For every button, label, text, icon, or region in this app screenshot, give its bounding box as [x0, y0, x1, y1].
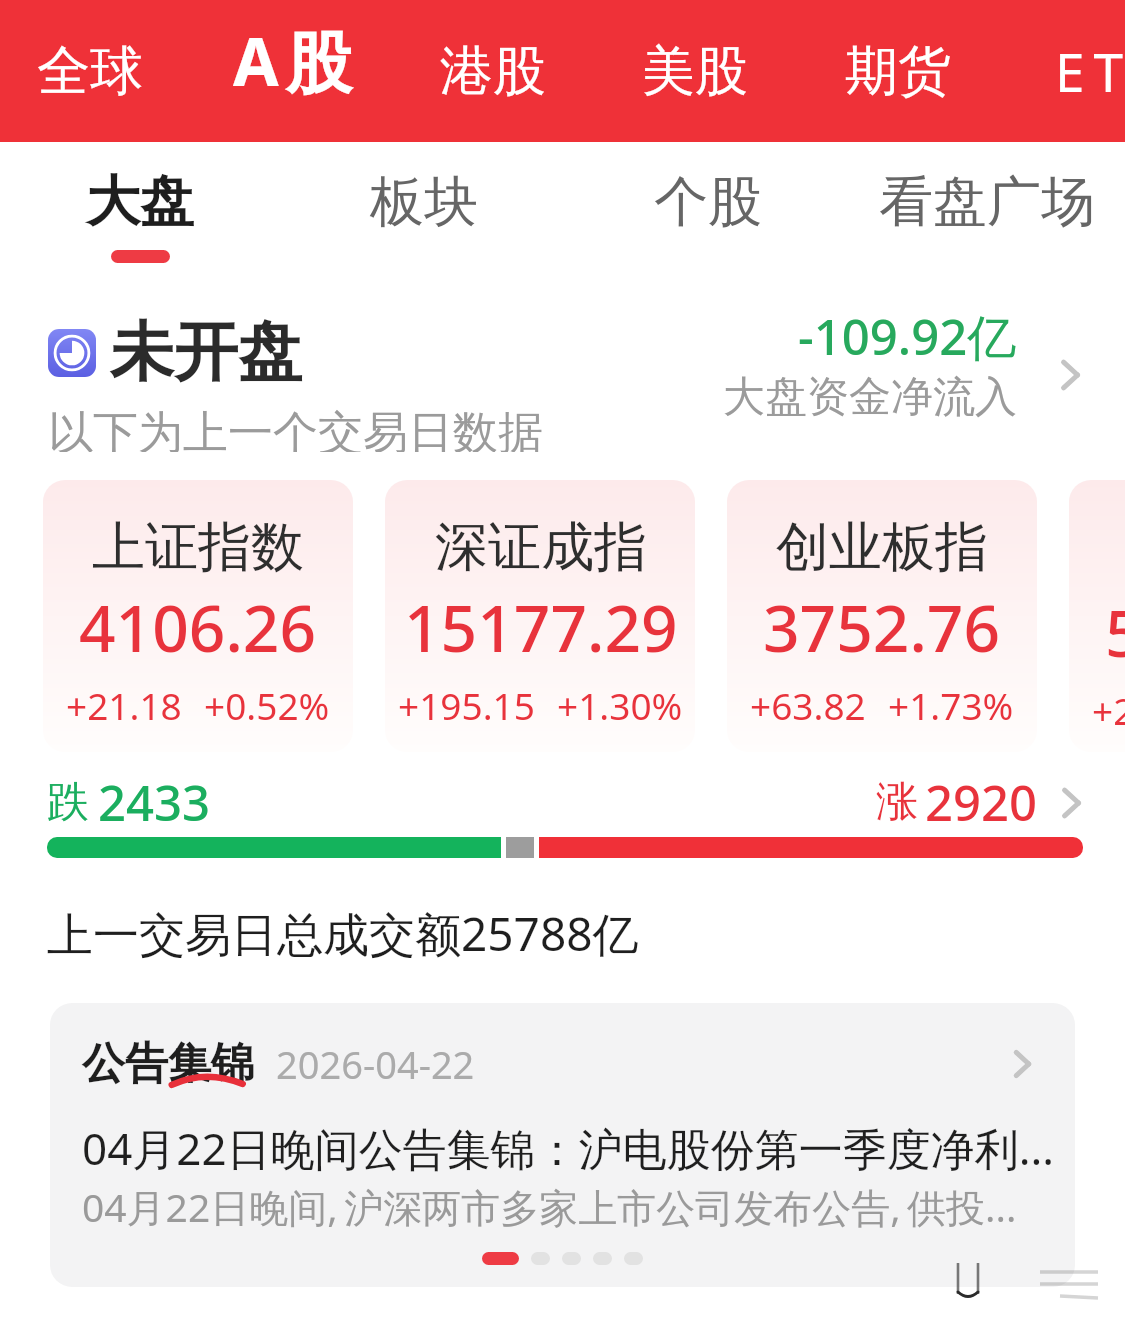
staticText: +1.73%	[888, 680, 1014, 730]
button[interactable]: 沪深300	[1069, 480, 1125, 752]
button[interactable]: 期货	[845, 0, 951, 142]
button[interactable]: 创业板指	[727, 480, 1037, 752]
button[interactable]: 个股	[654, 142, 762, 263]
button[interactable]: A股	[233, 0, 359, 142]
staticText: 看盘广场	[879, 168, 1095, 236]
staticText: 上证指数	[92, 514, 304, 581]
staticText: 以下为上一个交易日数据	[48, 405, 543, 452]
staticText: +0.52%	[204, 680, 330, 730]
staticText: +20.13	[1092, 685, 1125, 735]
staticText: 大盘资金净流入	[723, 371, 1017, 424]
staticText: 港股	[440, 38, 546, 105]
staticText: 涨	[876, 776, 918, 829]
button[interactable]: 深证成指	[385, 480, 695, 752]
staticText: 2920	[925, 769, 1038, 836]
button[interactable]: 未开盘	[0, 312, 1125, 452]
staticText: 公告集锦	[82, 1037, 254, 1091]
staticText: -109.92亿	[798, 303, 1017, 370]
staticText: +21.18	[66, 680, 182, 730]
staticText: 全球	[37, 38, 143, 105]
button[interactable]: 公告集锦	[50, 1003, 1075, 1287]
button[interactable]: 全球	[37, 0, 143, 142]
button[interactable]: 港股	[440, 0, 546, 142]
button[interactable]: 跌	[0, 769, 1125, 858]
button[interactable]: 看盘广场	[879, 142, 1095, 263]
staticText: 深证成指	[435, 514, 647, 581]
button[interactable]: 上证指数	[43, 480, 353, 752]
staticText: +1.30%	[557, 680, 683, 730]
staticText: 2026-04-22	[276, 1038, 475, 1090]
button[interactable]: 板块	[370, 142, 478, 263]
staticText: 期货	[845, 38, 951, 105]
staticText: 4106.26	[79, 584, 317, 671]
button[interactable]: 美股	[642, 0, 748, 142]
button[interactable]: ETF	[1055, 0, 1125, 142]
staticText: 3752.76	[763, 584, 1001, 671]
staticText: 上一交易日总成交额25788亿	[47, 902, 639, 965]
staticText: 04月22日晚间, 沪深两市多家上市公司发布公告, 供投...	[82, 1180, 1017, 1233]
staticText: +195.15	[398, 680, 535, 730]
staticText: 大盘	[86, 168, 194, 236]
button[interactable]: 大盘	[86, 142, 194, 263]
staticText: +63.82	[750, 680, 866, 730]
staticText: 美股	[642, 38, 748, 105]
staticText: 15177.29	[404, 584, 678, 671]
staticText: 2433	[98, 769, 211, 836]
staticText: 板块	[370, 168, 478, 236]
other: 资金流入详情	[1051, 312, 1089, 437]
staticText: 未开盘	[110, 312, 302, 393]
staticText: 创业板指	[776, 514, 988, 581]
staticText: 个股	[654, 168, 762, 236]
staticText: 04月22日晚间公告集锦：沪电股份第一季度净利...	[82, 1118, 1055, 1178]
staticText: 跌	[47, 776, 89, 829]
staticText: A股	[233, 15, 359, 105]
staticText: 5180.12	[1105, 589, 1125, 676]
staticText: ETF	[1055, 35, 1125, 107]
